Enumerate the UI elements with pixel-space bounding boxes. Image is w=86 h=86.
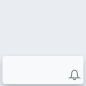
button[interactable]: Notifications xyxy=(2,56,83,84)
